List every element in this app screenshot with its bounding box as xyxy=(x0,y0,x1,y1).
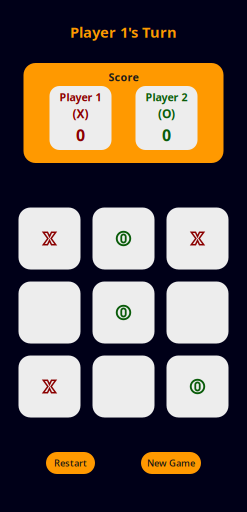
button[interactable]: X xyxy=(18,355,80,417)
staticText: Score xyxy=(108,70,138,84)
staticText: (O) xyxy=(158,105,175,121)
button[interactable]: Empty square xyxy=(166,281,228,343)
button[interactable]: Empty square xyxy=(92,355,154,417)
button[interactable]: X xyxy=(18,207,80,269)
button[interactable]: X xyxy=(166,207,228,269)
staticText: (X) xyxy=(72,105,88,121)
button[interactable]: O xyxy=(92,281,154,343)
staticText: Player 1 xyxy=(59,90,101,104)
staticText: Player 1's Turn xyxy=(70,22,177,42)
staticText: 0 xyxy=(76,124,85,146)
button[interactable]: Restart xyxy=(46,452,95,474)
button[interactable]: Empty square xyxy=(18,281,80,343)
staticText: Restart xyxy=(54,457,87,469)
button[interactable]: O xyxy=(166,355,228,417)
staticText: New Game xyxy=(147,457,195,469)
staticText: 0 xyxy=(162,124,171,146)
staticText: Player 2 xyxy=(145,90,187,104)
button[interactable]: New Game xyxy=(141,452,201,474)
button[interactable]: O xyxy=(92,207,154,269)
